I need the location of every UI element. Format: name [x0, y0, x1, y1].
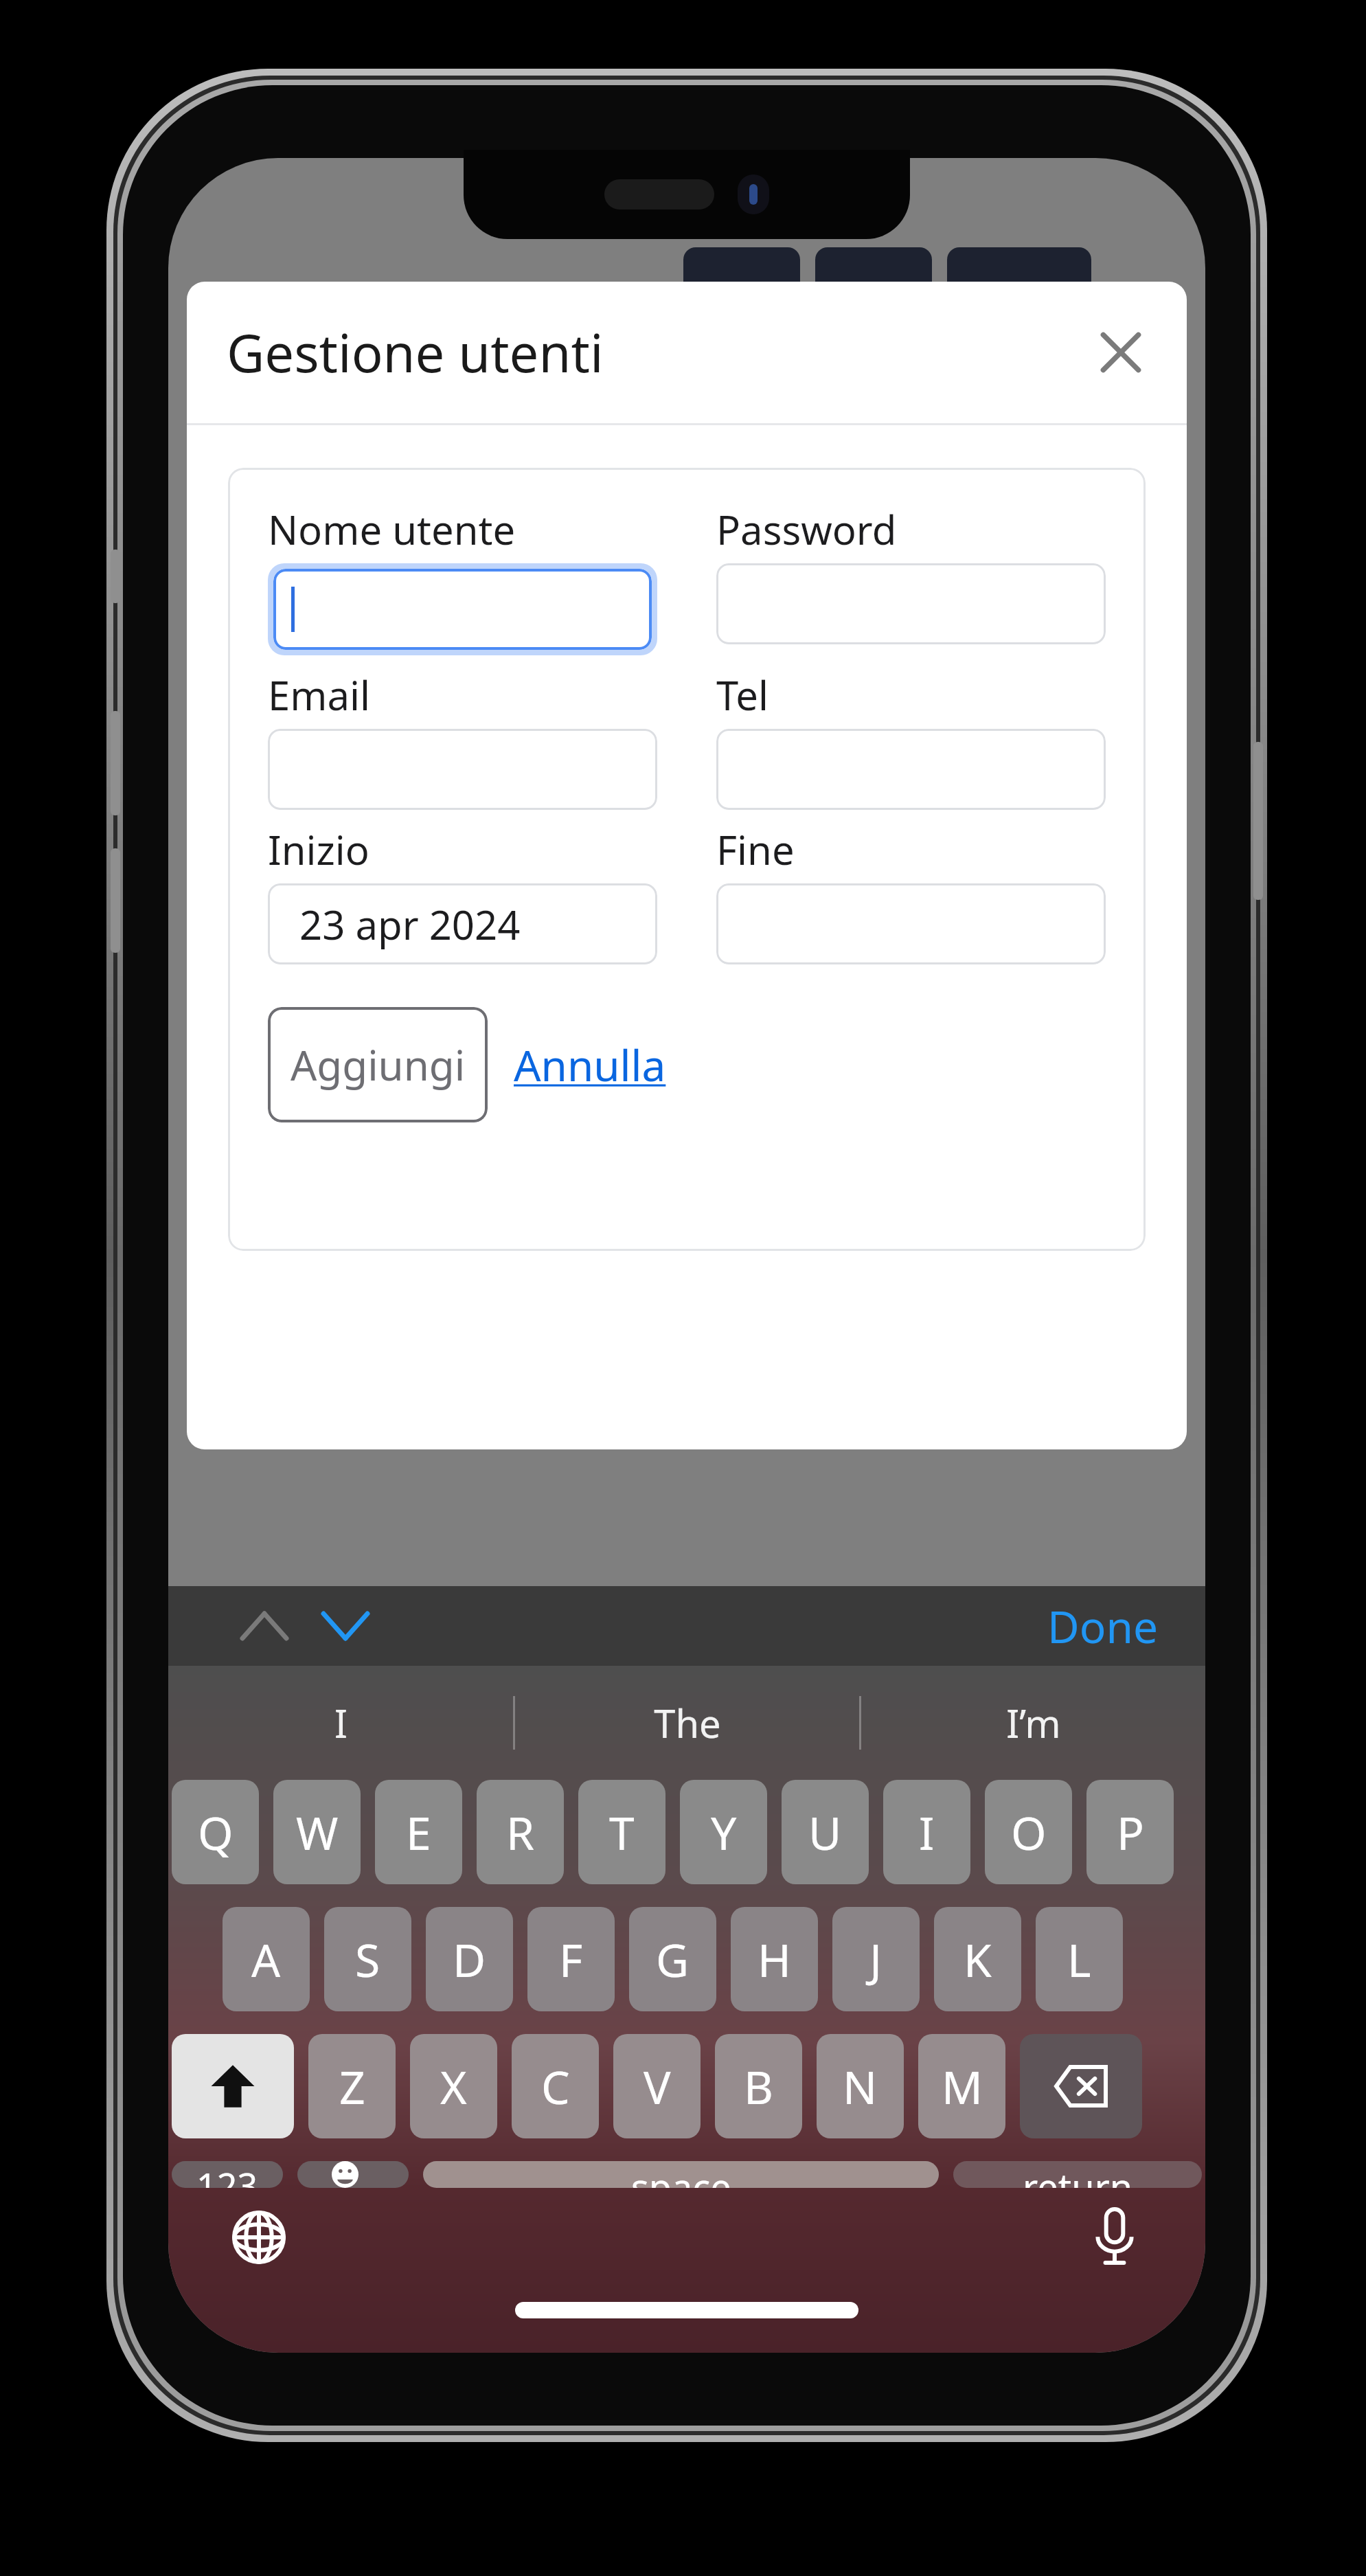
button[interactable]: L [1036, 1907, 1123, 2011]
staticText: Aggiungi [291, 1037, 466, 1093]
staticText: K [964, 1928, 992, 1990]
staticText: Done [1047, 1596, 1159, 1656]
button[interactable]: Z [308, 2034, 396, 2138]
button[interactable]: The [515, 1666, 859, 1780]
button[interactable]: C [512, 2034, 599, 2138]
staticText: D [453, 1928, 486, 1990]
button[interactable]: B [715, 2034, 802, 2138]
staticText: B [744, 2055, 773, 2117]
button[interactable] [273, 569, 652, 650]
button[interactable]: M [918, 2034, 1005, 2138]
button[interactable]: I [168, 1666, 513, 1780]
staticText: Q [198, 1801, 234, 1863]
staticText: P [1117, 1801, 1144, 1863]
button[interactable]: D [426, 1907, 513, 2011]
button[interactable]: Done [1039, 1590, 1167, 1663]
staticText: C [541, 2055, 570, 2117]
button[interactable]: G [629, 1907, 716, 2011]
button[interactable]: Campo precedente [231, 1593, 297, 1659]
button[interactable]: W [273, 1780, 361, 1884]
button[interactable]: space [423, 2161, 939, 2188]
button[interactable] [716, 563, 1106, 644]
staticText: Annulla [514, 1036, 666, 1094]
button[interactable]: Q [172, 1780, 259, 1884]
button[interactable]: A [223, 1907, 310, 2011]
staticText: Fine [716, 822, 795, 877]
staticText: Nome utente [268, 502, 516, 556]
staticText: V [644, 2055, 671, 2117]
staticText: W [296, 1801, 339, 1863]
staticText: I [334, 1697, 348, 1749]
staticText: O [1011, 1801, 1047, 1863]
button[interactable]: Dettatura [1073, 2196, 1156, 2279]
staticText: N [843, 2055, 878, 2117]
staticText: L [1067, 1928, 1091, 1990]
button[interactable]: Maiuscole [172, 2034, 294, 2138]
button[interactable]: E [375, 1780, 462, 1884]
staticText: Inizio [268, 822, 369, 877]
button[interactable]: Y [680, 1780, 767, 1884]
staticText: I’m [1006, 1697, 1061, 1749]
button[interactable]: P [1086, 1780, 1174, 1884]
button[interactable]: H [731, 1907, 818, 2011]
button[interactable] [268, 729, 657, 810]
button[interactable]: 23 apr 2024 [268, 883, 657, 964]
button[interactable] [716, 729, 1106, 810]
staticText: space [631, 2161, 731, 2188]
staticText: M [942, 2055, 983, 2117]
button[interactable]: Elimina [1020, 2034, 1142, 2138]
button[interactable]: O [985, 1780, 1072, 1884]
staticText: Z [339, 2055, 365, 2117]
staticText: I [919, 1801, 935, 1863]
button[interactable]: Emoji [297, 2161, 409, 2188]
button[interactable]: K [934, 1907, 1021, 2011]
button[interactable]: J [832, 1907, 920, 2011]
staticText: S [355, 1928, 380, 1990]
staticText: Tel [716, 668, 769, 722]
staticText: 23 apr 2024 [299, 897, 521, 951]
button[interactable]: return [953, 2161, 1202, 2188]
staticText: G [656, 1928, 690, 1990]
button[interactable]: I [883, 1780, 970, 1884]
button[interactable]: N [817, 2034, 904, 2138]
button[interactable]: F [527, 1907, 615, 2011]
button[interactable]: I’m [861, 1666, 1205, 1780]
button[interactable]: V [613, 2034, 701, 2138]
staticText: The [654, 1697, 721, 1749]
staticText: Email [268, 668, 370, 722]
staticText: Y [711, 1801, 737, 1863]
button[interactable]: U [782, 1780, 869, 1884]
button[interactable]: R [477, 1780, 564, 1884]
button[interactable] [716, 883, 1106, 964]
staticText: U [808, 1801, 842, 1863]
staticText: X [440, 2055, 467, 2117]
button[interactable]: T [578, 1780, 665, 1884]
staticText: F [559, 1928, 583, 1990]
staticText: J [869, 1928, 883, 1990]
staticText: Password [716, 502, 897, 556]
button[interactable]: Campo successivo [312, 1593, 378, 1659]
button[interactable]: Aggiungi [268, 1007, 488, 1122]
staticText: A [251, 1928, 281, 1990]
button[interactable]: Numeri [172, 2161, 283, 2188]
button[interactable]: Annulla [510, 1026, 670, 1103]
button[interactable]: S [324, 1907, 411, 2011]
staticText: return [1023, 2161, 1133, 2188]
staticText: Gestione utenti [227, 317, 604, 388]
staticText: T [609, 1801, 635, 1863]
staticText: 123 [196, 2161, 258, 2188]
button[interactable]: Cambia tastiera [218, 2196, 300, 2279]
button[interactable]: Chiudi [1082, 314, 1159, 391]
button[interactable]: X [410, 2034, 497, 2138]
staticText: R [506, 1801, 535, 1863]
staticText: E [406, 1801, 431, 1863]
staticText: H [758, 1928, 791, 1990]
